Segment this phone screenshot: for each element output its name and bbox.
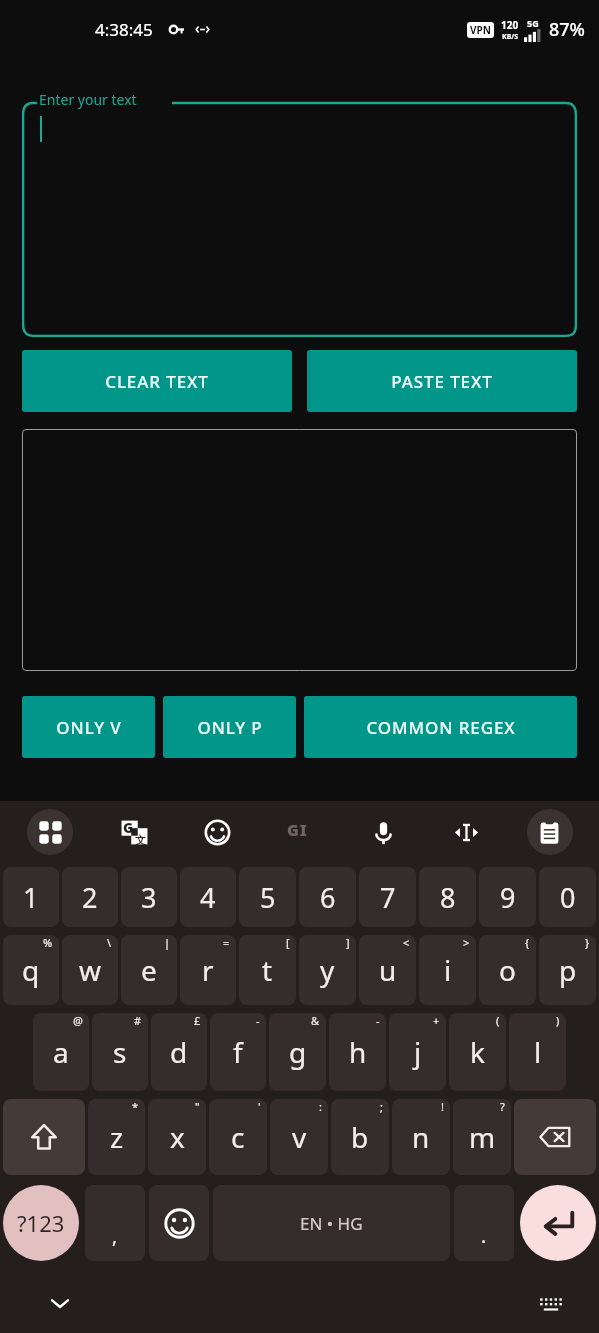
button[interactable]: Hide keyboard (38, 1281, 82, 1325)
staticText: EN • HG (300, 1212, 363, 1235)
staticText: @ (73, 1013, 83, 1028)
button[interactable]: t (239, 935, 296, 1005)
staticText: h (349, 1033, 367, 1071)
button[interactable]: k (449, 1013, 506, 1091)
button[interactable]: ONLY V (22, 696, 155, 758)
staticText: r (202, 951, 214, 989)
button[interactable]: Clipboard (508, 801, 591, 863)
staticText: k (470, 1033, 485, 1071)
staticText: j (414, 1033, 422, 1071)
staticText: . (481, 1223, 487, 1249)
button[interactable]: EN • HG (213, 1185, 450, 1261)
staticText: £ (194, 1013, 201, 1028)
button[interactable]: Keyboard menu (8, 801, 92, 863)
button[interactable]: r (180, 935, 236, 1005)
button[interactable]: ONLY P (163, 696, 296, 758)
staticText: p (559, 951, 577, 989)
button[interactable]: 0 (539, 867, 596, 927)
staticText: 0 (560, 879, 576, 916)
button[interactable]: c (209, 1099, 267, 1175)
button[interactable]: 3 (121, 867, 177, 927)
staticText: s (113, 1033, 127, 1071)
button[interactable]: Voice input (342, 801, 425, 863)
staticText: , (112, 1223, 118, 1249)
staticText: y (320, 951, 335, 989)
staticText: i (444, 951, 452, 989)
button[interactable]: l (509, 1013, 566, 1091)
staticText: } (585, 935, 590, 950)
button[interactable]: ?123 (3, 1185, 79, 1261)
button[interactable]: f (210, 1013, 266, 1091)
button[interactable]: GIF (259, 801, 342, 863)
button[interactable]: j (389, 1013, 446, 1091)
staticText: ; (380, 1099, 383, 1114)
button[interactable]: 1 (3, 867, 59, 927)
button[interactable]: 2 (62, 867, 118, 927)
button[interactable]: e (121, 935, 177, 1005)
button[interactable]: b (331, 1099, 389, 1175)
button[interactable]: Shift (3, 1099, 85, 1175)
button[interactable]: . (454, 1185, 514, 1261)
staticText: g (289, 1033, 307, 1071)
button[interactable]: y (299, 935, 356, 1005)
button[interactable]: 4 (180, 867, 236, 927)
button[interactable]: d (151, 1013, 207, 1091)
button[interactable]: a (33, 1013, 89, 1091)
staticText: < (403, 935, 410, 950)
button[interactable]: i (419, 935, 476, 1005)
staticText: 5 (260, 879, 276, 916)
button[interactable]: x (148, 1099, 206, 1175)
staticText: 8 (440, 879, 456, 916)
staticText: e (141, 951, 157, 989)
staticText: \ (107, 935, 112, 950)
staticText: ONLY P (197, 716, 263, 739)
button[interactable]: n (392, 1099, 450, 1175)
button[interactable]: g (269, 1013, 326, 1091)
button[interactable]: z (88, 1099, 145, 1175)
button[interactable]: Switch keyboard (529, 1281, 573, 1325)
button[interactable]: 5 (239, 867, 296, 927)
staticText: KB/S (502, 32, 519, 42)
button[interactable]: h (329, 1013, 386, 1091)
button[interactable]: Emoji (176, 801, 259, 863)
staticText: q (22, 951, 40, 989)
button[interactable]: 9 (479, 867, 536, 927)
button[interactable]: w (62, 935, 118, 1005)
staticText: z (110, 1118, 124, 1156)
staticText: VPN (470, 23, 491, 37)
button[interactable]: Emoji (149, 1185, 209, 1261)
button[interactable]: o (479, 935, 536, 1005)
staticText: | (164, 935, 171, 950)
button[interactable]: 7 (359, 867, 416, 927)
staticText: 7 (380, 879, 396, 916)
staticText: ?123 (17, 1208, 65, 1238)
staticText: PASTE TEXT (391, 370, 493, 393)
button[interactable]: q (3, 935, 59, 1005)
staticText: v (292, 1118, 307, 1156)
staticText: x (170, 1118, 185, 1156)
button[interactable]: Translate (92, 801, 176, 863)
staticText: 3 (141, 879, 157, 916)
staticText: & (311, 1013, 320, 1028)
button[interactable]: s (92, 1013, 148, 1091)
button[interactable]: v (270, 1099, 328, 1175)
button[interactable]: 8 (419, 867, 476, 927)
button[interactable]: u (359, 935, 416, 1005)
button[interactable]: m (453, 1099, 511, 1175)
button[interactable]: Enter (520, 1185, 596, 1261)
button[interactable]: Backspace (514, 1099, 596, 1175)
staticText: w (79, 951, 102, 989)
button[interactable]: , (85, 1185, 145, 1261)
staticText: CLEAR TEXT (105, 370, 209, 393)
staticText: COMMON REGEX (366, 716, 516, 739)
staticText: = (223, 935, 230, 950)
staticText: [ (286, 935, 290, 950)
staticText: + (433, 1013, 440, 1028)
button[interactable]: Text editing (425, 801, 508, 863)
button[interactable]: COMMON REGEX (304, 696, 577, 758)
button[interactable]: CLEAR TEXT (22, 350, 292, 412)
button[interactable]: PASTE TEXT (307, 350, 577, 412)
button[interactable]: 6 (299, 867, 356, 927)
button[interactable]: p (539, 935, 596, 1005)
staticText: - (256, 1013, 260, 1028)
